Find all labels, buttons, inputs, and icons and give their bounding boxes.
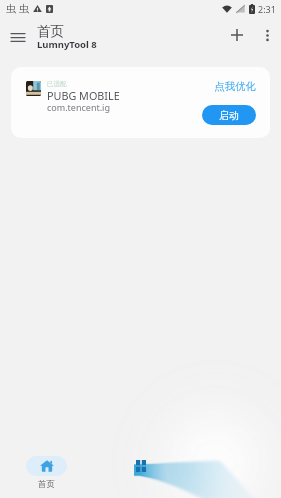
button[interactable]: Apps <box>120 456 161 476</box>
staticText: PUBG MOBILE <box>47 88 120 103</box>
button[interactable]: 启动 <box>202 105 256 125</box>
staticText: 2:31 <box>258 3 276 15</box>
staticText: 已适配 <box>47 80 67 88</box>
staticText: 点我优化 <box>214 80 256 93</box>
button[interactable]: More options <box>249 17 281 53</box>
button[interactable]: 已适配 <box>11 67 270 138</box>
staticText: 首页 <box>37 23 64 40</box>
staticText: LumnyTool 8 <box>37 38 97 51</box>
staticText: 启动 <box>219 109 239 122</box>
button[interactable]: 点我优化 <box>214 80 256 93</box>
button[interactable]: Settings <box>214 456 255 476</box>
button[interactable]: 首页 <box>26 442 67 490</box>
staticText: 虫 <box>19 2 29 15</box>
staticText: 虫 <box>6 2 16 15</box>
staticText: 首页 <box>38 479 55 490</box>
button[interactable]: Add <box>219 17 255 53</box>
staticText: com.tencent.ig <box>47 101 110 113</box>
button[interactable]: Menu <box>3 19 33 55</box>
